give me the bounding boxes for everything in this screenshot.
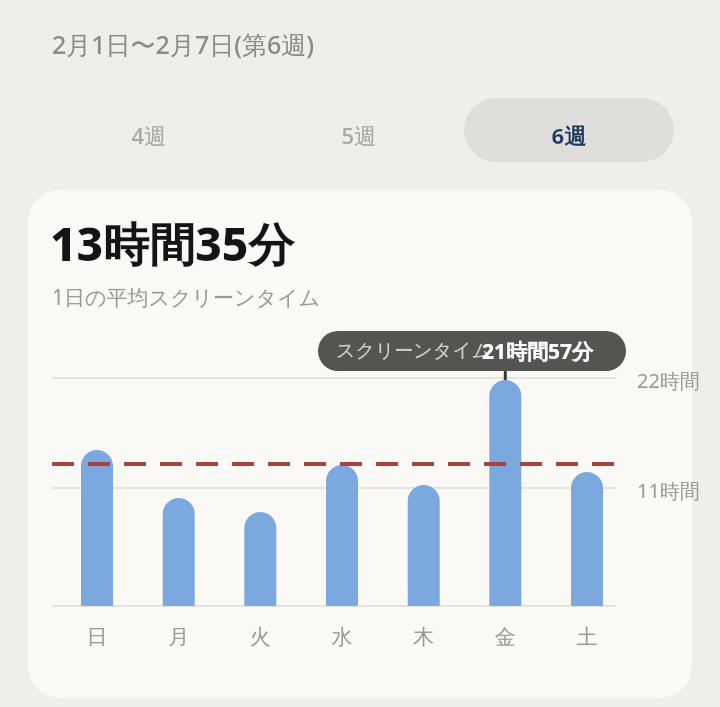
button[interactable] bbox=[88, 98, 210, 162]
button[interactable]: Screen time chart bbox=[28, 190, 692, 698]
button[interactable] bbox=[298, 98, 420, 162]
button[interactable] bbox=[464, 98, 674, 162]
